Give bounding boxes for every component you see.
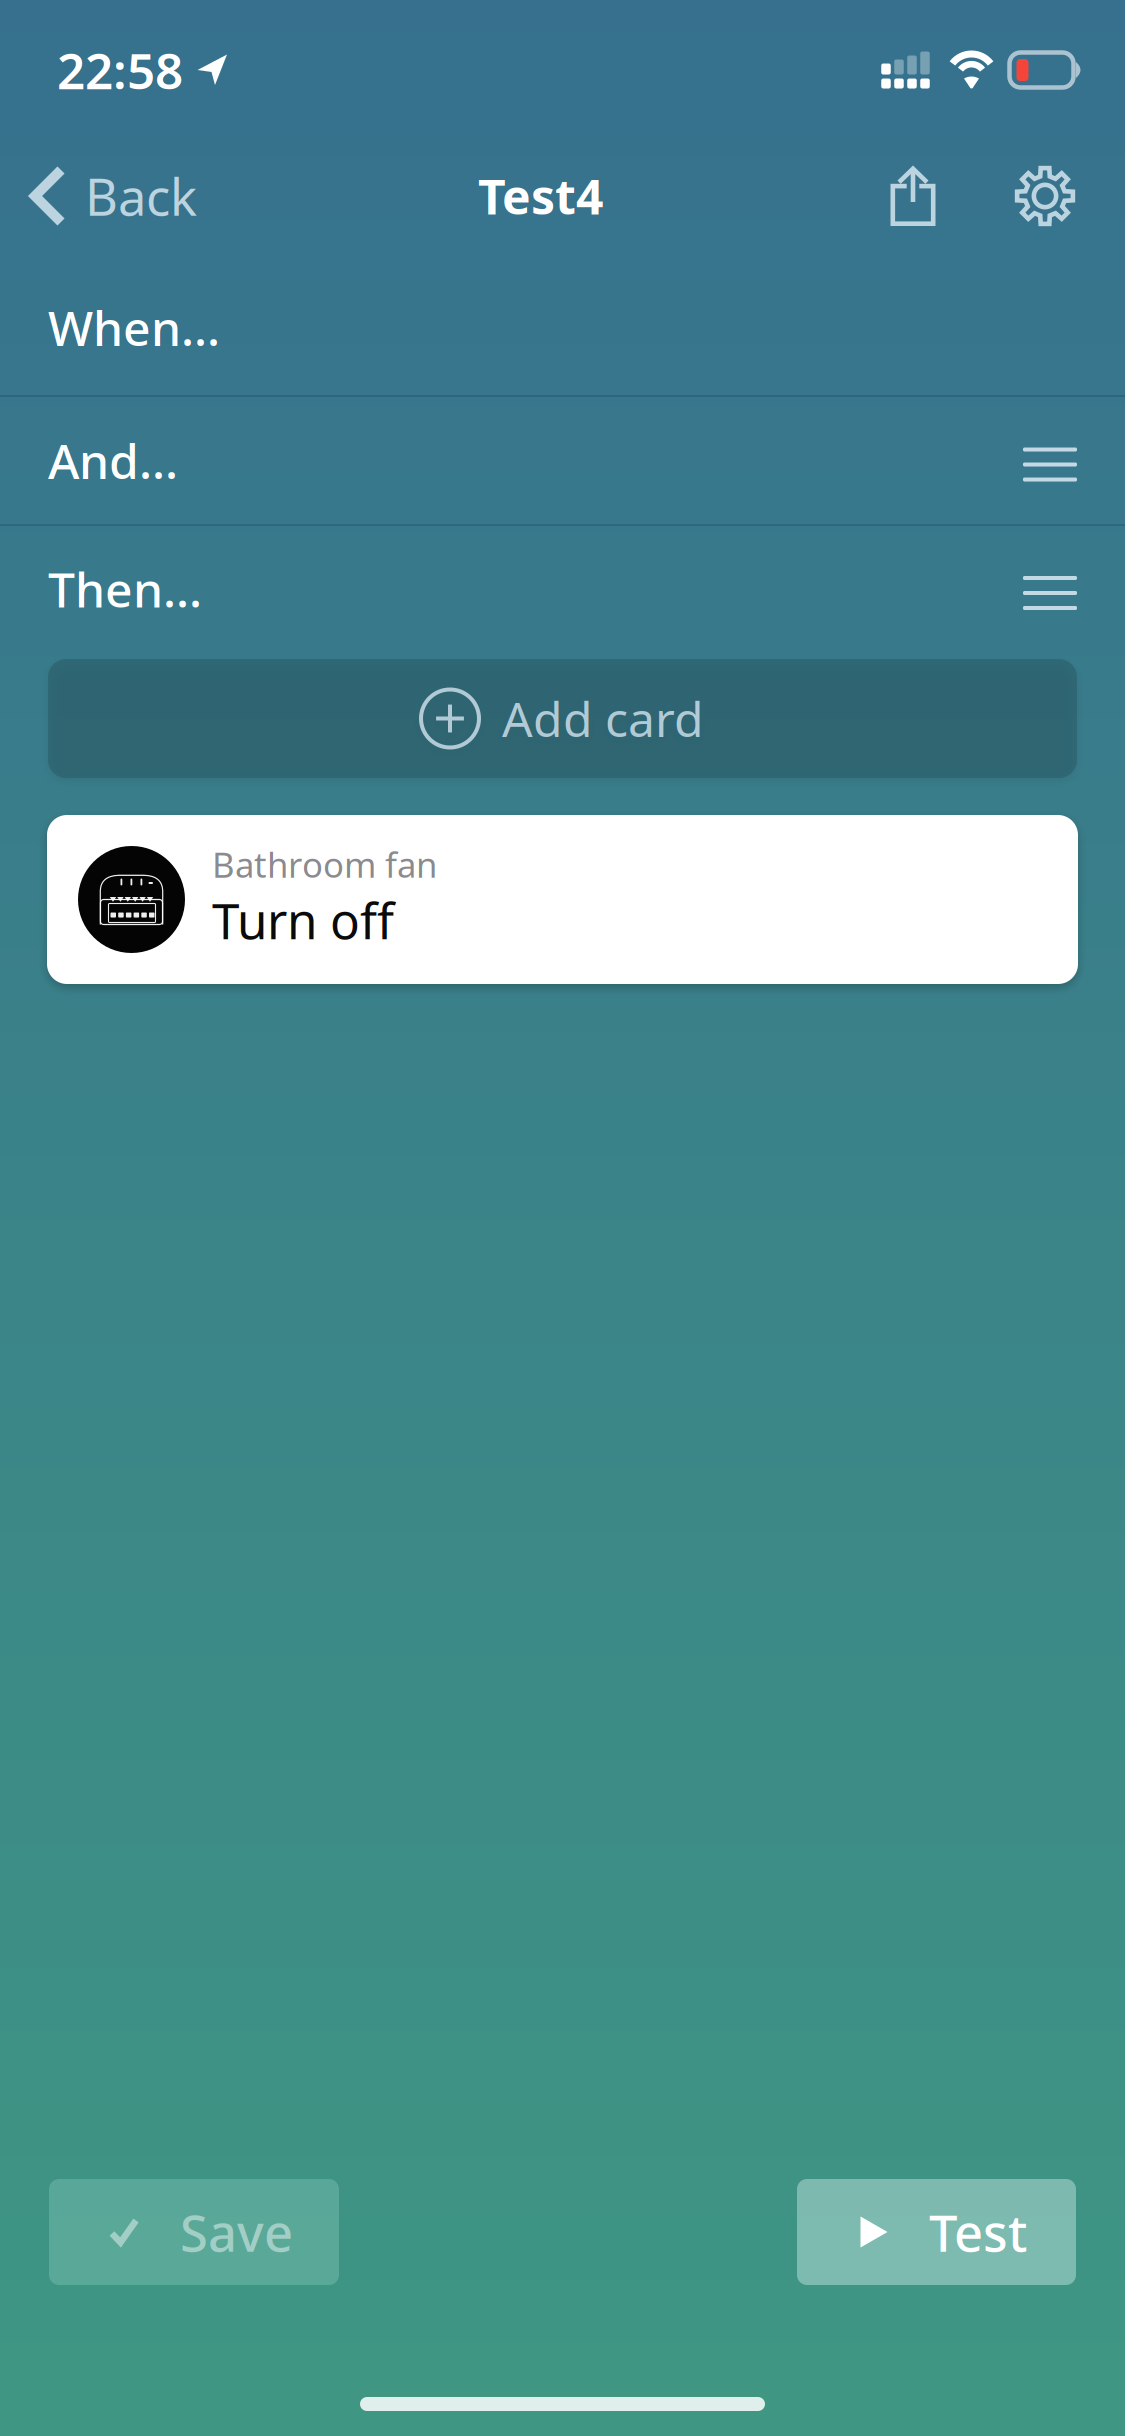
button[interactable]: Test: [797, 2179, 1076, 2285]
staticText: And...: [48, 429, 178, 492]
staticText: 22:58: [57, 37, 183, 103]
staticText: Turn off: [212, 887, 394, 953]
button[interactable]: Back: [0, 132, 218, 260]
staticText: Test: [929, 2198, 1027, 2266]
button[interactable]: Bathroom fan: [47, 815, 1078, 984]
staticText: Back: [85, 162, 197, 230]
button[interactable]: And...: [0, 397, 1125, 524]
staticText: Then...: [48, 557, 202, 621]
staticText: Test4: [478, 164, 603, 228]
button[interactable]: When...: [0, 260, 1125, 395]
staticText: Save: [180, 2198, 293, 2266]
button[interactable]: Then...: [0, 526, 1125, 652]
button[interactable]: Settings: [997, 132, 1093, 260]
button[interactable]: Add card: [48, 659, 1077, 778]
staticText: Add card: [502, 687, 704, 750]
button[interactable]: Share: [865, 132, 961, 260]
staticText: Bathroom fan: [212, 841, 437, 887]
staticText: When...: [48, 296, 220, 359]
button[interactable]: Save: [49, 2179, 339, 2285]
